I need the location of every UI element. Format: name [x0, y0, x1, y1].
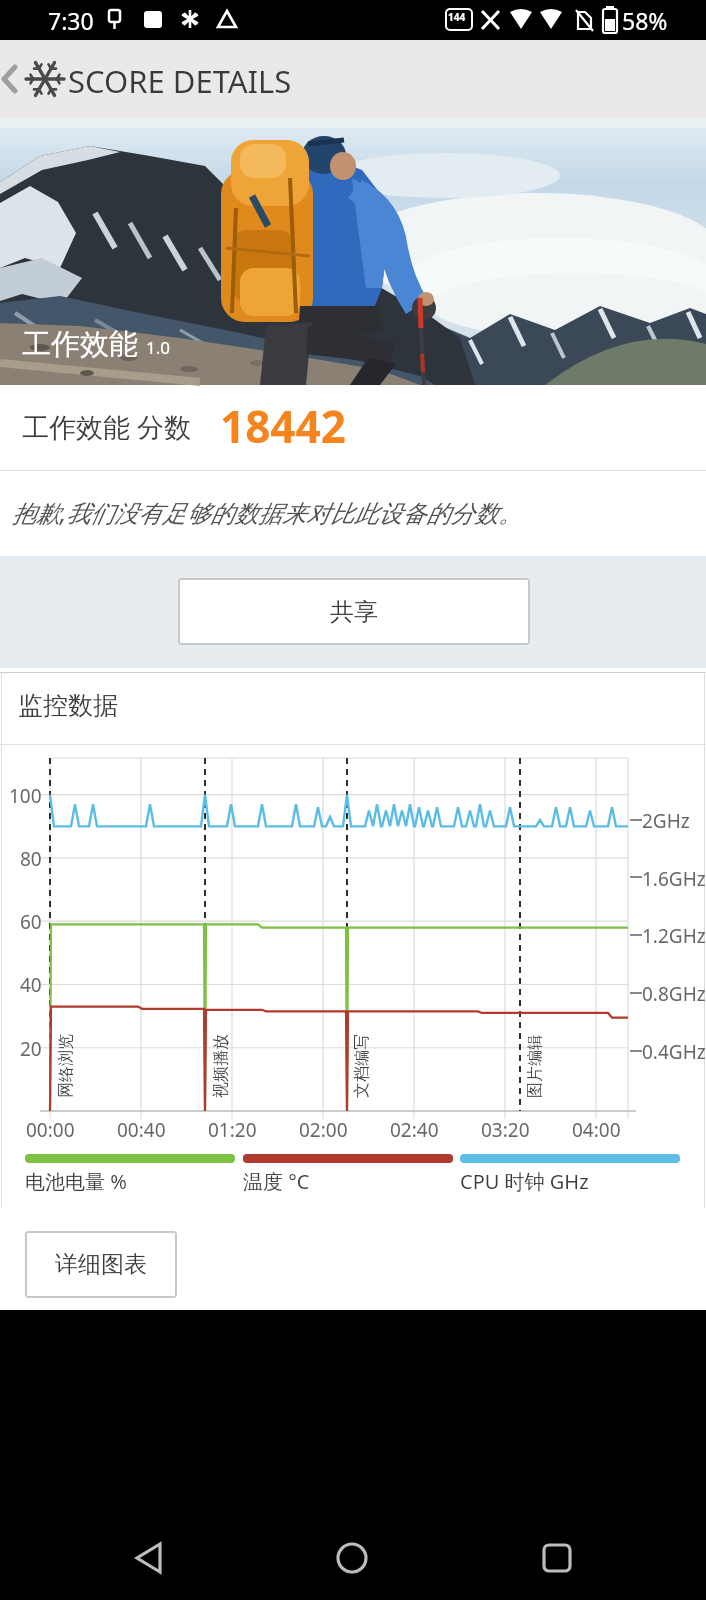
staticText: 18442	[220, 396, 346, 456]
staticText: 温度 °C	[243, 1168, 310, 1195]
staticText: 1.2GHz	[642, 923, 706, 947]
staticText: CPU 时钟 GHz	[460, 1168, 589, 1195]
button[interactable]	[507, 1508, 607, 1600]
staticText: 01:20	[208, 1117, 257, 1141]
staticText: 1.6GHz	[642, 866, 706, 890]
staticText: 监控数据	[18, 690, 118, 721]
staticText: SCORE DETAILS	[68, 60, 292, 102]
staticText: 1.0	[146, 336, 171, 359]
staticText: 02:00	[299, 1117, 348, 1141]
staticText: 0.4GHz	[642, 1039, 706, 1063]
staticText: 58%	[622, 5, 668, 36]
staticText: 40	[20, 972, 42, 996]
staticText: 00:40	[117, 1117, 166, 1141]
staticText: 0.8GHz	[642, 981, 706, 1005]
staticText: 04:00	[572, 1117, 621, 1141]
staticText: 2GHz	[642, 808, 690, 832]
staticText: 03:20	[481, 1117, 530, 1141]
staticText: 抱歉,我们没有足够的数据来对比此设备的分数。	[12, 496, 523, 529]
staticText: 02:40	[390, 1117, 439, 1141]
button[interactable]	[0, 40, 706, 118]
staticText: 00:00	[26, 1117, 75, 1141]
staticText: 7:30	[48, 5, 94, 36]
staticText: 共享	[330, 597, 378, 627]
staticText: 工作效能	[22, 326, 138, 363]
staticText: 详细图表	[55, 1250, 147, 1279]
staticText: 144	[448, 10, 466, 24]
button[interactable]	[302, 1508, 402, 1600]
button[interactable]: 详细图表	[25, 1231, 177, 1298]
staticText: 电池电量 %	[25, 1168, 127, 1195]
button[interactable]	[100, 1508, 200, 1600]
staticText: 80	[20, 846, 42, 870]
staticText: 60	[20, 909, 42, 933]
staticText: 图片编辑	[525, 1034, 545, 1098]
staticText: 网络浏览	[56, 1034, 76, 1098]
staticText: 工作效能 分数	[22, 408, 192, 445]
staticText: 100	[9, 783, 42, 807]
staticText: 文档编写	[352, 1034, 372, 1098]
button[interactable]: 共享	[178, 578, 530, 645]
staticText: 20	[20, 1036, 42, 1060]
staticText: 视频播放	[211, 1034, 231, 1098]
